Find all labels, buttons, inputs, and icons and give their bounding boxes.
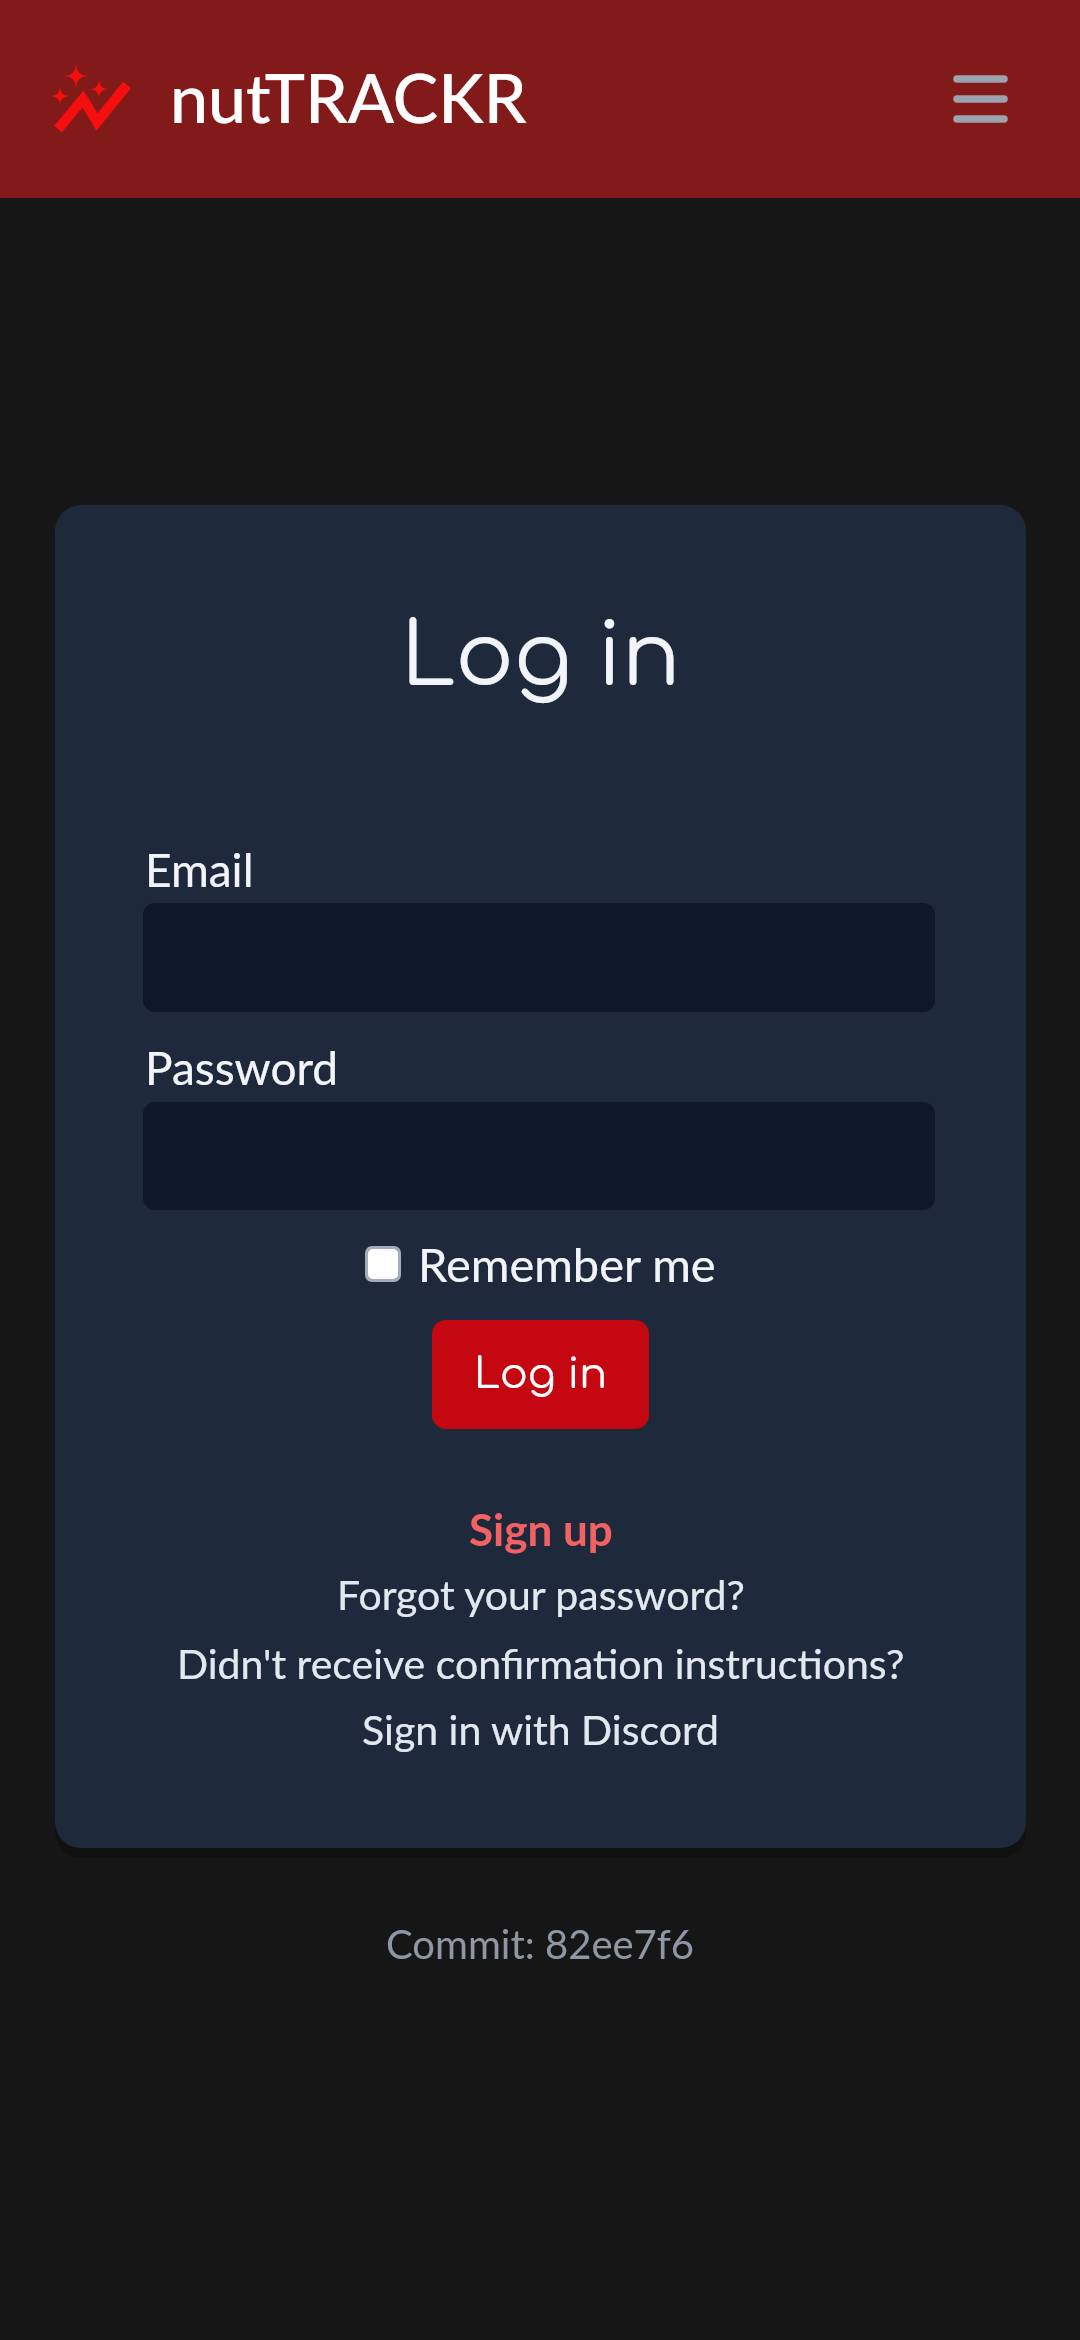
staticText: nutTRACKR — [170, 56, 527, 138]
button[interactable] — [925, 50, 1035, 148]
button[interactable]: Sign in with Discord — [362, 1705, 719, 1754]
staticText: Log in — [401, 609, 681, 705]
staticText: Commit: 82ee7f6 — [386, 1920, 695, 1968]
staticText: Email — [145, 842, 254, 897]
staticText: Password — [145, 1040, 339, 1095]
button[interactable]: Didn't receive confirmation instructions… — [177, 1639, 905, 1688]
button[interactable]: Remember me — [365, 1236, 716, 1292]
staticText: Log in — [474, 1352, 608, 1398]
button[interactable]: Forgot your password? — [337, 1570, 745, 1619]
staticText: Remember me — [418, 1236, 716, 1292]
button[interactable]: Sign up — [469, 1503, 613, 1556]
button[interactable]: Log in — [432, 1320, 649, 1429]
